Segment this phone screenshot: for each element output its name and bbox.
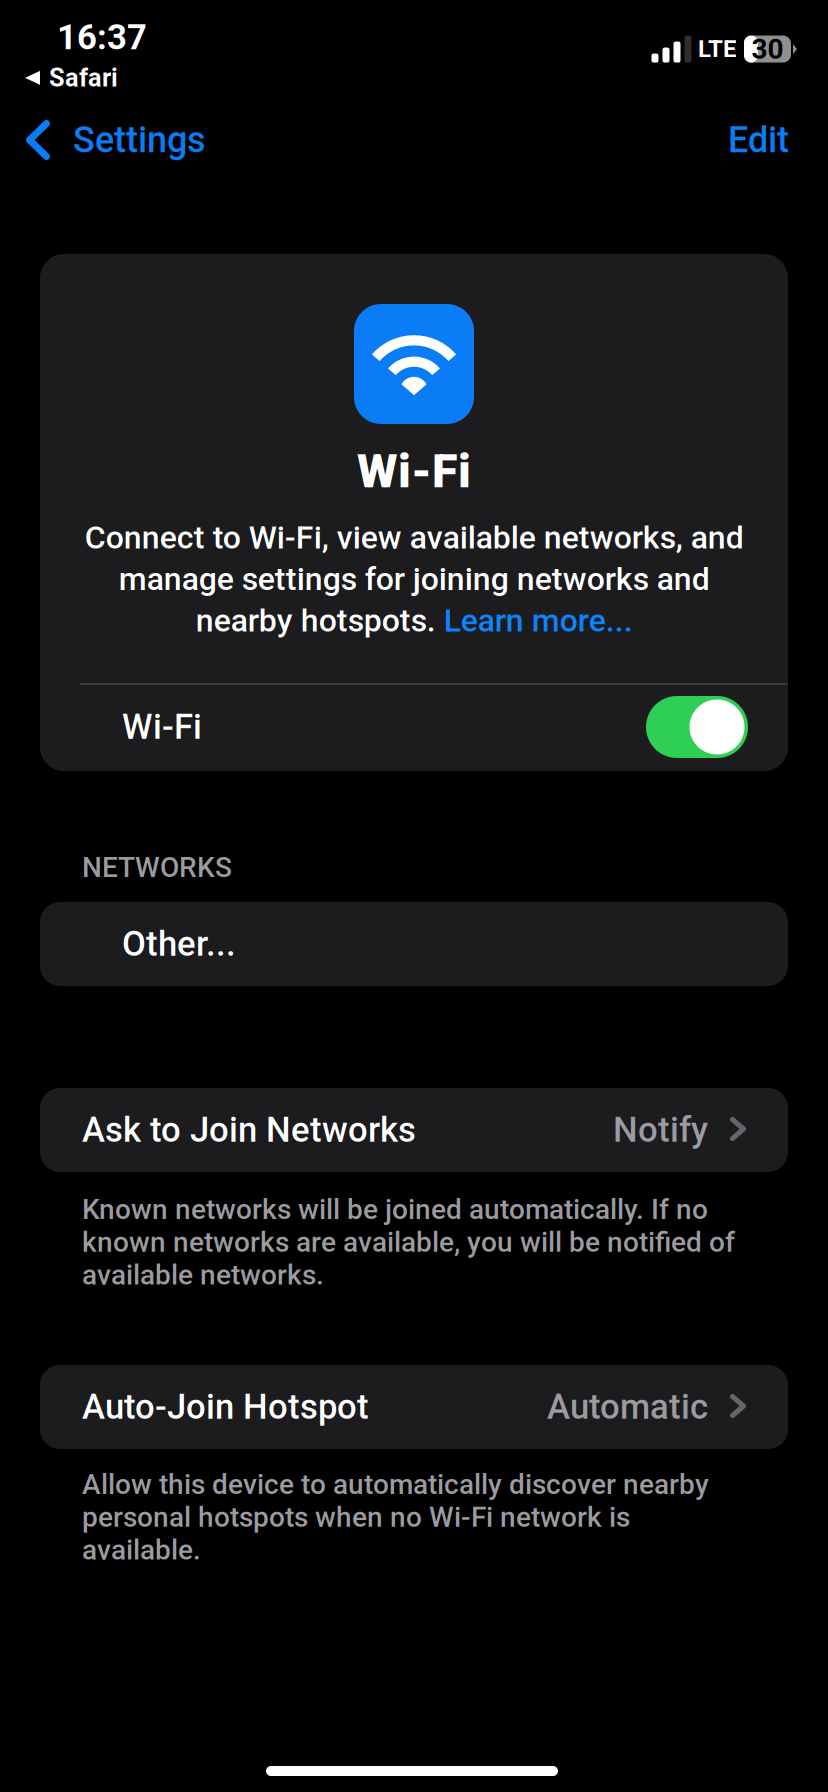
staticText: NETWORKS — [82, 851, 232, 884]
staticText: Notify — [613, 1110, 708, 1150]
staticText: Other... — [122, 924, 236, 964]
staticText: Wi-Fi — [122, 707, 202, 747]
staticText: Connect to Wi-Fi, view available network… — [84, 519, 743, 639]
staticText: Allow this device to automatically disco… — [82, 1468, 709, 1566]
button[interactable]: Ask to Join Networks — [40, 1088, 788, 1172]
staticText: Settings — [73, 119, 206, 161]
button[interactable]: Edit — [702, 107, 789, 173]
staticText: 16:37 — [57, 17, 147, 58]
staticText: LTE — [698, 35, 737, 63]
staticText: Safari — [49, 63, 118, 93]
staticText: 30 — [751, 33, 783, 65]
button[interactable]: Safari — [15, 55, 128, 101]
button[interactable]: Wi-Fi — [646, 696, 748, 758]
staticText: Auto-Join Hotspot — [82, 1387, 369, 1427]
staticText: Automatic — [547, 1387, 708, 1427]
staticText: Edit — [728, 119, 789, 161]
staticText: Wi-Fi — [357, 444, 471, 499]
button[interactable]: Auto-Join Hotspot — [40, 1365, 788, 1449]
button[interactable]: Other... — [40, 902, 788, 986]
staticText: Ask to Join Networks — [82, 1110, 416, 1150]
staticText: Known networks will be joined automatica… — [82, 1193, 735, 1291]
button[interactable]: Settings — [0, 107, 224, 173]
